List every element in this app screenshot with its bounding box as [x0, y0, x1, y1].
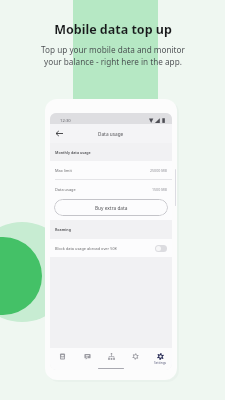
staticText: Top up your mobile data and monitor your… [41, 44, 185, 67]
staticText: Max limit [55, 168, 72, 173]
staticText: Data usage [98, 131, 124, 137]
staticText: Roaming [55, 227, 71, 232]
button[interactable]: Max limit [50, 161, 172, 180]
staticText: 12:30 [60, 118, 71, 124]
button[interactable]: Services [99, 348, 123, 370]
staticText: Settings [154, 361, 167, 365]
button[interactable]: Buy extra data [54, 199, 168, 216]
button[interactable]: Back [53, 127, 66, 140]
staticText: Monthly data usage [55, 150, 91, 155]
staticText: Buy extra data [95, 205, 128, 211]
staticText: Data usage [55, 187, 76, 192]
button[interactable]: Block data usage abroad over 50€ [50, 239, 172, 257]
button[interactable]: Settings [148, 348, 172, 370]
button[interactable]: Messages [75, 348, 99, 370]
staticText: Block data usage abroad over 50€ [55, 246, 117, 251]
staticText: 25000 MB [150, 168, 167, 173]
staticText: 1500 MB [152, 187, 167, 192]
button[interactable]: Support [123, 348, 147, 370]
button[interactable]: Shop [50, 348, 74, 370]
staticText: Mobile data top up [54, 21, 172, 38]
button[interactable]: Data usage [50, 180, 172, 198]
